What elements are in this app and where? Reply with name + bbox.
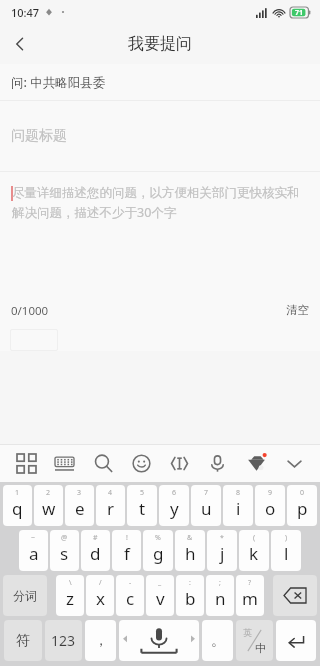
staticText: 中 [255,641,266,655]
button[interactable]: ) [271,530,301,571]
button[interactable]: 6 [159,485,189,526]
button[interactable]: Search [91,451,115,475]
staticText: h [185,542,196,565]
staticText: 0/1000 [11,303,49,319]
staticText: ~ [31,533,36,543]
button[interactable]: 分词 [3,575,47,616]
button[interactable]: 问题标题 [0,101,320,171]
button[interactable]: 8 [223,485,253,526]
button[interactable]: Enter [276,620,316,661]
staticText: k [249,542,259,565]
button[interactable]: 1 [3,485,32,526]
staticText: 10:47 [11,5,40,20]
button[interactable]: Theme [244,451,268,475]
button[interactable]: 问: 中共略阳县委 [0,64,320,100]
button[interactable]: Add image [10,329,58,351]
button[interactable]: * [207,530,237,571]
button[interactable]: Backspace [273,575,317,616]
button[interactable]: Back [0,24,40,64]
button[interactable]: Switch language [236,620,273,661]
staticText: d [90,542,101,565]
button[interactable]: 4 [96,485,125,526]
staticText: z [66,587,74,610]
staticText: _ [158,578,162,588]
staticText: x [96,587,105,610]
button[interactable]: Voice [205,451,229,475]
button[interactable]: ~ [19,530,48,571]
staticText: t [139,497,146,520]
button[interactable]: 0 [287,485,317,526]
staticText: 符 [16,632,30,650]
staticText: 分词 [13,588,37,603]
button[interactable]: ， [85,620,116,661]
button[interactable]: 符 [4,620,42,661]
staticText: 问: 中共略阳县委 [11,74,106,91]
staticText: ; [219,578,221,588]
button[interactable]: Emoji [129,451,153,475]
staticText: n [215,587,226,610]
button[interactable]: 。 [202,620,233,661]
button[interactable]: 尽量详细描述您的问题，以方便相关部门更快核实和解决问题，描述不少于30个字 [0,172,320,327]
staticText: ? [248,578,252,588]
button[interactable]: ? [236,575,264,616]
button[interactable]: Keyboard [52,451,76,475]
button[interactable]: Grid [14,451,38,475]
button[interactable]: Space [119,620,199,661]
staticText: - [129,578,132,588]
button[interactable]: @ [50,530,79,571]
staticText: ( [253,533,256,543]
staticText: i [236,497,241,520]
staticText: / [99,578,102,588]
button[interactable]: 清空 [286,303,309,317]
staticText: 7 [204,488,209,498]
staticText: ! [126,533,128,543]
staticText: g [153,542,164,565]
staticText: & [187,533,193,543]
staticText: 。 [211,632,225,650]
staticText: 5 [140,488,145,498]
staticText: 1 [15,488,20,498]
staticText: : [189,578,191,588]
staticText: o [265,497,276,520]
staticText: s [60,542,69,565]
button[interactable]: - [116,575,144,616]
button[interactable]: # [81,530,110,571]
staticText: f [124,542,130,565]
button[interactable]: % [143,530,173,571]
staticText: b [185,587,196,610]
staticText: 我要提问 [128,34,192,54]
button[interactable]: _ [146,575,174,616]
staticText: 8 [236,488,241,498]
button[interactable]: ; [206,575,234,616]
button[interactable]: / [86,575,114,616]
staticText: u [201,497,212,520]
staticText: 问题标题 [11,127,67,145]
staticText: 123 [51,631,76,650]
button[interactable]: 2 [34,485,63,526]
button[interactable]: ( [239,530,269,571]
button[interactable]: Collapse keyboard [282,451,306,475]
button[interactable]: \ [56,575,84,616]
staticText: y [170,497,179,520]
staticText: \ [69,578,72,588]
button[interactable]: 9 [255,485,285,526]
staticText: 0 [300,488,305,498]
staticText: q [12,497,23,520]
staticText: p [297,497,308,520]
button[interactable]: 7 [191,485,221,526]
button[interactable]: 3 [65,485,94,526]
staticText: v [156,587,165,610]
button[interactable]: 5 [127,485,157,526]
button[interactable]: 123 [45,620,82,661]
button[interactable]: Clipboard [167,451,191,475]
staticText: a [29,542,39,565]
staticText: % [155,533,161,543]
staticText: 9 [268,488,273,498]
staticText: j [220,542,225,565]
button[interactable]: ! [112,530,141,571]
staticText: 71 [295,8,304,18]
staticText: r [107,497,115,520]
button[interactable]: : [176,575,204,616]
staticText: e [75,497,85,520]
button[interactable]: & [175,530,205,571]
